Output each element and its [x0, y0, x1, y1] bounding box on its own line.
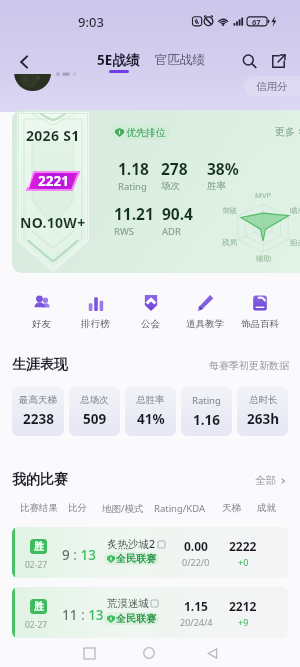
staticText: 2221: [38, 172, 69, 190]
staticText: 地图/模式: [102, 502, 144, 515]
staticText: 11 : 13: [62, 606, 110, 624]
staticText: 总胜率: [136, 394, 165, 406]
staticText: 1.18: [118, 158, 149, 179]
staticText: 0.00: [184, 538, 208, 554]
button[interactable]: 好友: [15, 294, 67, 338]
staticText: 509: [83, 410, 107, 428]
staticText: 残局: [222, 238, 237, 247]
staticText: 2212: [229, 598, 257, 614]
staticText: 好友: [32, 318, 51, 330]
staticText: 排行榜: [81, 318, 110, 330]
staticText: RWS: [114, 225, 134, 238]
staticText: 38%: [207, 158, 239, 179]
staticText: 02-27: [25, 619, 48, 631]
staticText: 9:03: [78, 13, 104, 31]
button[interactable]: 最高天梯: [12, 386, 64, 436]
staticText: 1.16: [193, 411, 220, 429]
staticText: 胜: [34, 540, 44, 553]
staticText: Rating/KDA: [154, 502, 206, 515]
staticText: +0: [238, 556, 249, 568]
staticText: 瞄准: [290, 206, 300, 215]
button[interactable]: 饰品百科: [234, 294, 286, 338]
staticText: 荒漠迷城: [107, 597, 149, 610]
button[interactable]: 全部: [255, 474, 287, 487]
staticText: 辅助: [256, 254, 271, 263]
button[interactable]: 公会: [124, 294, 176, 338]
button[interactable]: 优先排位: [115, 124, 166, 140]
staticText: 1.15: [184, 598, 208, 614]
staticText: 比赛结果: [20, 502, 58, 514]
button[interactable]: Rating: [181, 386, 232, 436]
button[interactable]: 更多: [275, 125, 300, 138]
staticText: ADR: [162, 225, 181, 238]
button[interactable]: Share: [265, 48, 291, 74]
button[interactable]: Search: [236, 48, 262, 74]
staticText: 比分: [68, 502, 87, 514]
staticText: 90.4: [162, 203, 193, 224]
button[interactable]: 5E战绩: [97, 51, 140, 73]
button[interactable]: 总时长: [237, 386, 288, 436]
staticText: 炙热沙城2: [107, 537, 156, 551]
staticText: 生涯表现: [12, 356, 68, 374]
button[interactable]: Back: [199, 640, 225, 666]
staticText: 02-27: [25, 559, 48, 571]
staticText: 公会: [141, 318, 160, 330]
button[interactable]: 排行榜: [69, 294, 121, 338]
staticText: 成就: [257, 502, 276, 514]
staticText: +9: [238, 616, 249, 628]
button[interactable]: 总场次: [69, 386, 120, 436]
staticText: Rating: [118, 180, 147, 193]
staticText: 优先排位: [126, 126, 166, 139]
button[interactable]: Home: [136, 640, 162, 666]
staticText: 突破: [222, 206, 237, 215]
staticText: 饰品百科: [241, 318, 279, 330]
staticText: 2026 S1: [26, 126, 80, 145]
staticText: 20/24/4: [180, 616, 213, 628]
staticText: 总时长: [249, 394, 278, 406]
staticText: 每赛季初更新数据: [209, 359, 289, 372]
staticText: NO.10W+: [20, 213, 86, 232]
staticText: 263h: [247, 410, 279, 428]
staticText: 胜率: [207, 180, 226, 192]
staticText: 全民联赛: [116, 612, 156, 625]
staticText: 场次: [161, 180, 180, 192]
staticText: 胜: [34, 600, 44, 613]
button[interactable]: 官匹战绩: [155, 52, 205, 68]
staticText: 天梯: [222, 502, 241, 514]
staticText: 最高天梯: [19, 394, 57, 406]
staticText: 11.21: [114, 203, 154, 224]
staticText: Rating: [192, 394, 221, 407]
button[interactable]: 胜: [12, 527, 288, 578]
staticText: 全部: [255, 474, 276, 487]
staticText: 全民联赛: [116, 552, 156, 565]
button[interactable]: Recents: [76, 640, 102, 666]
button[interactable]: 信用分: [244, 76, 300, 96]
staticText: 9 : 13: [62, 546, 110, 564]
button[interactable]: 胜: [12, 587, 288, 638]
button[interactable]: Back: [10, 48, 38, 76]
staticText: 2238: [23, 410, 54, 428]
staticText: MVP: [255, 190, 271, 200]
staticText: 5E战绩: [97, 51, 140, 69]
button[interactable]: 道具教学: [179, 294, 231, 338]
staticText: 我的比赛: [12, 471, 68, 489]
staticText: 278: [161, 158, 188, 179]
staticText: 信用分: [256, 80, 288, 93]
staticText: 更多: [275, 125, 295, 138]
button[interactable]: 总胜率: [125, 386, 176, 436]
staticText: 2222: [229, 538, 257, 554]
staticText: 67: [252, 17, 261, 27]
staticText: 总场次: [80, 394, 109, 406]
staticText: 道具教学: [186, 318, 224, 330]
staticText: 41%: [137, 410, 165, 428]
staticText: 0/22/0: [182, 556, 210, 568]
staticText: 狙击: [290, 238, 300, 247]
